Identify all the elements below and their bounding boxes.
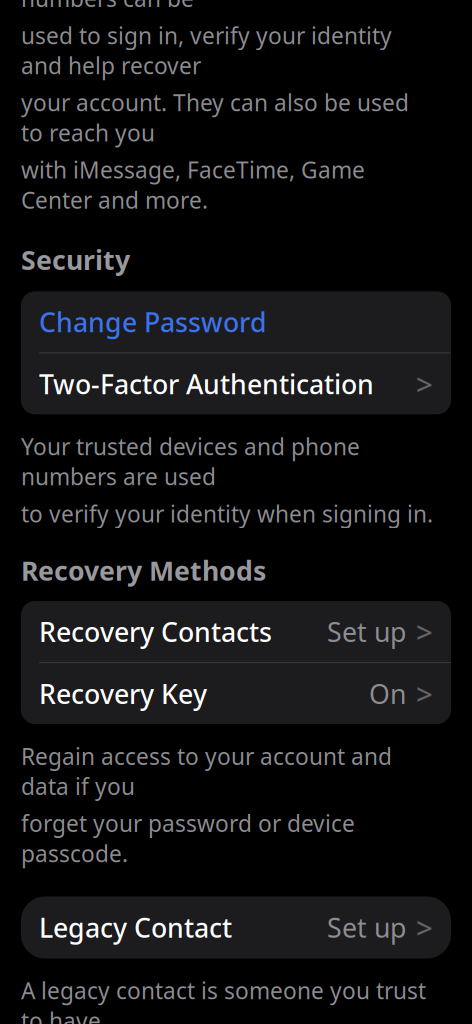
button[interactable]: Recovery Key [21, 663, 451, 724]
staticText: forget your password or device passcode. [21, 808, 355, 868]
staticText: your account. They can also be used to r… [21, 87, 409, 148]
staticText: Security [21, 242, 130, 277]
staticText: Recovery Key [39, 676, 207, 711]
staticText: Regain access to your account and data i… [21, 741, 392, 801]
button[interactable]: Recovery Contacts [21, 601, 451, 662]
staticText: to verify your identity when signing in. [21, 499, 433, 529]
button[interactable]: Two-Factor Authentication [21, 353, 451, 414]
staticText: > [416, 364, 433, 403]
staticText: Your trusted devices and phone numbers a… [21, 431, 360, 491]
button[interactable]: Change Password [21, 291, 451, 352]
staticText: Legacy Contact [39, 910, 232, 945]
staticText: Change Password [39, 304, 267, 339]
staticText: Recovery Contacts [39, 614, 272, 649]
staticText: Set up [327, 910, 406, 945]
staticText: > [416, 908, 433, 947]
staticText: Two-Factor Authentication [39, 366, 374, 401]
staticText: with iMessage, FaceTime, Game Center and… [21, 155, 365, 215]
staticText: Recovery Methods [21, 553, 266, 588]
staticText: A legacy contact is someone you trust to… [21, 975, 426, 1024]
staticText: Set up [327, 614, 406, 649]
button[interactable]: Legacy Contact [21, 896, 451, 958]
staticText: On [369, 676, 406, 711]
staticText: used to sign in, verify your identity an… [21, 20, 392, 80]
staticText: > [416, 674, 433, 713]
staticText: > [416, 612, 433, 651]
staticText: These email addresses and phone numbers … [21, 0, 387, 13]
